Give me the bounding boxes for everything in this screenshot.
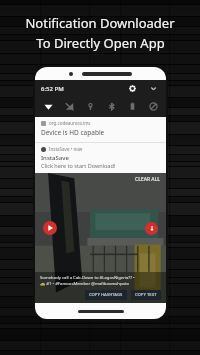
button[interactable]: Quick setting toggle (62, 99, 76, 113)
button[interactable]: Settings (126, 82, 139, 95)
button[interactable]: Expand (147, 82, 160, 95)
staticText: 🚕 #1 • #FamousMember @mafiboomshpoto (40, 281, 130, 287)
staticText: org.codeaurora.ims (49, 120, 91, 126)
staticText: InstaSave (41, 154, 69, 162)
button[interactable]: Download (145, 222, 158, 235)
staticText: Notification Downloader (25, 14, 175, 32)
staticText: COPY HASHTAGS (89, 292, 123, 298)
button[interactable]: CLEAR ALL (135, 173, 166, 183)
button[interactable]: Quick setting toggle (83, 99, 97, 113)
button[interactable]: Quick setting toggle (125, 99, 139, 113)
button[interactable]: COPY HASHTAGS (85, 290, 127, 300)
staticText: Device is HD capable (41, 128, 105, 137)
staticText: To Directly Open App (36, 34, 165, 52)
button[interactable]: org.codeaurora.ims (35, 117, 166, 142)
button[interactable]: Quick setting toggle (41, 99, 55, 113)
staticText: Somebody call a Cab-Down to #LagosNigeri… (40, 275, 135, 281)
button[interactable]: Quick setting toggle (104, 99, 118, 113)
staticText: COPY TEXT (135, 292, 157, 298)
staticText: Click here to start Download! (41, 162, 116, 169)
staticText: 6:52 PM (41, 85, 64, 93)
button[interactable]: Quick setting toggle (146, 99, 160, 113)
button[interactable]: COPY TEXT (131, 290, 161, 300)
button[interactable]: InstaSave • now (35, 143, 166, 173)
staticText: InstaSave • now (49, 146, 83, 152)
button[interactable]: Play (43, 221, 57, 235)
